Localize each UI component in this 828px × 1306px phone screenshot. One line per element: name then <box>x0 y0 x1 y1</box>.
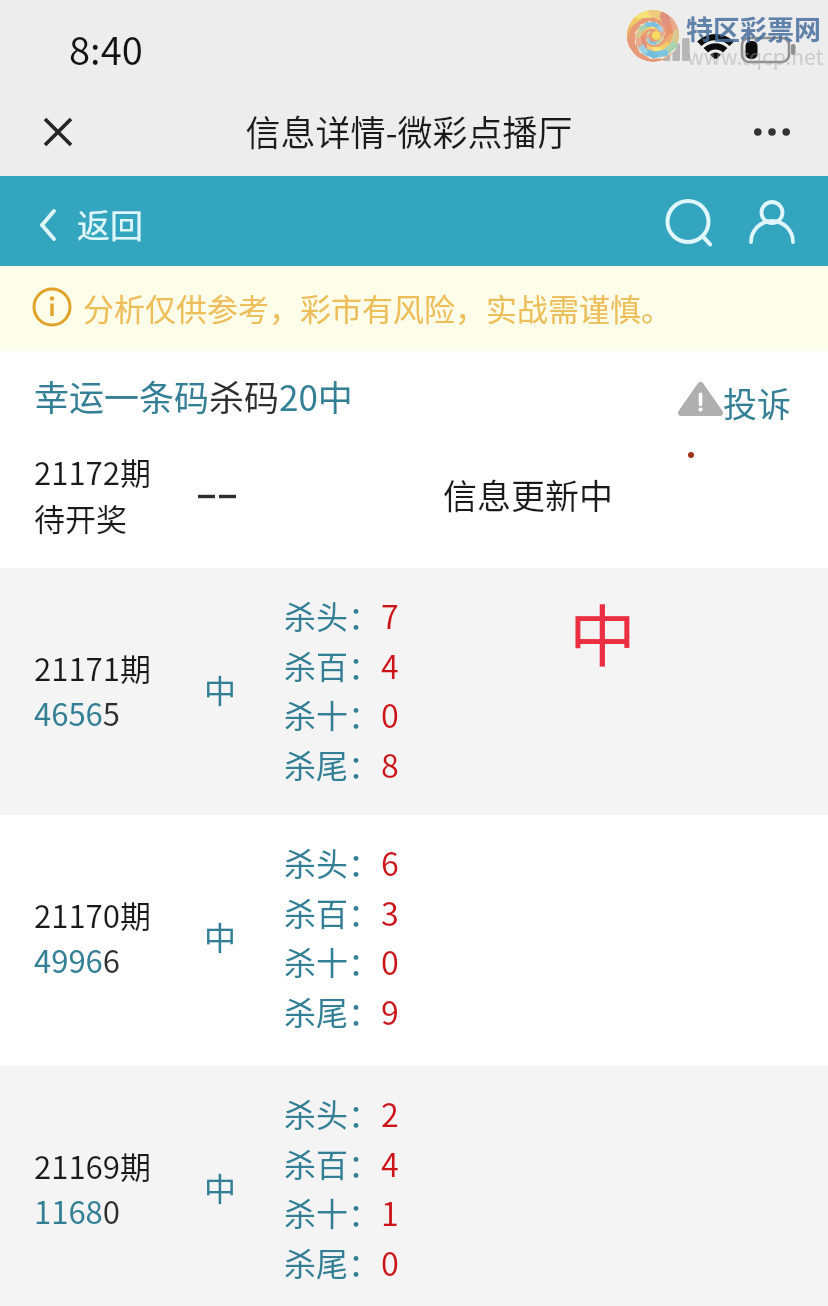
staticText: 中 <box>204 1164 237 1210</box>
staticText: 3 <box>381 889 399 935</box>
staticText: 中 <box>569 583 636 680</box>
staticText: 1 <box>381 1189 399 1235</box>
button[interactable]: Close <box>31 105 87 161</box>
staticText: 特区彩票网 <box>686 9 821 48</box>
button[interactable]: 返回 <box>29 193 143 257</box>
staticText: 46565 <box>34 690 121 735</box>
staticText: 待开奖 <box>34 495 127 540</box>
staticText: 0 <box>381 691 399 737</box>
staticText: 4 <box>381 642 399 688</box>
button[interactable]: 21170期 <box>0 815 828 1066</box>
staticText: 杀尾： <box>284 1239 381 1285</box>
staticText: 信息更新中 <box>443 470 613 519</box>
staticText: 中 <box>204 913 237 959</box>
staticText: 8:40 <box>69 21 143 76</box>
staticText: 幸运一条码杀码20中 <box>34 370 353 421</box>
staticText: www.tqcp.net <box>687 41 824 71</box>
staticText: 杀百： <box>284 642 381 688</box>
button[interactable]: 21171期 <box>0 568 828 815</box>
staticText: 9 <box>381 988 399 1034</box>
button[interactable]: 投诉 <box>678 375 791 424</box>
staticText: 杀尾： <box>284 988 381 1034</box>
staticText: 杀十： <box>284 938 381 984</box>
staticText: 6 <box>381 839 399 885</box>
staticText: 21172期 <box>34 449 152 494</box>
staticText: 杀十： <box>284 691 381 737</box>
staticText: 杀尾： <box>284 741 381 787</box>
staticText: 0 <box>381 938 399 984</box>
staticText: 8 <box>381 741 399 787</box>
button[interactable]: Search <box>653 185 723 255</box>
staticText: 21171期 <box>34 645 152 690</box>
staticText: 2 <box>381 1090 399 1136</box>
staticText: 0 <box>381 1239 399 1285</box>
staticText: 杀十： <box>284 1189 381 1235</box>
staticText: 21169期 <box>34 1143 152 1188</box>
staticText: 杀头： <box>284 839 381 885</box>
staticText: 返回 <box>77 200 143 248</box>
staticText: 投诉 <box>723 378 791 427</box>
staticText: 中 <box>204 666 237 712</box>
staticText: 杀百： <box>284 1140 381 1186</box>
button[interactable]: 21169期 <box>0 1066 828 1306</box>
staticText: 21170期 <box>34 892 152 937</box>
button[interactable]: Profile <box>737 184 807 254</box>
staticText: 杀百： <box>284 889 381 935</box>
staticText: 杀头： <box>284 1090 381 1136</box>
staticText: 49966 <box>34 937 121 982</box>
staticText: 4 <box>381 1140 399 1186</box>
button[interactable]: More options <box>736 100 808 164</box>
staticText: 杀头： <box>284 592 381 638</box>
staticText: 信息详情-微彩点播厅 <box>0 105 823 156</box>
staticText: 分析仅供参考，彩市有风险，实战需谨慎。 <box>83 285 672 330</box>
staticText: 7 <box>381 592 399 638</box>
staticText: 11680 <box>34 1188 121 1233</box>
